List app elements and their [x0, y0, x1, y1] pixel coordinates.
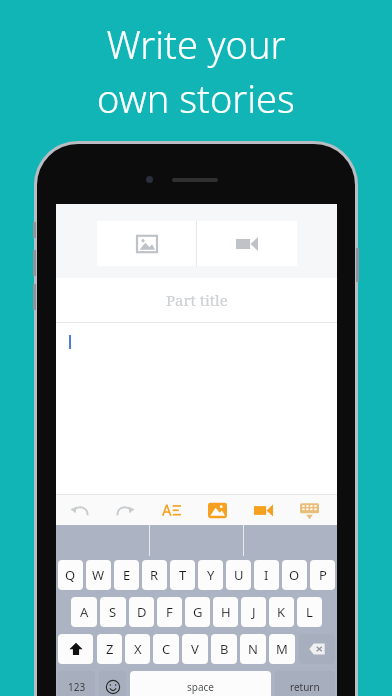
button[interactable]: Z	[97, 634, 122, 664]
button[interactable]: L	[297, 597, 322, 627]
staticText: G	[193, 603, 203, 621]
staticText: F	[166, 603, 173, 621]
staticText: W	[92, 566, 105, 584]
staticText: P	[319, 566, 327, 584]
staticText: M	[276, 640, 288, 658]
button[interactable]: U	[226, 560, 251, 590]
staticText: K	[277, 603, 286, 621]
staticText: own stories	[97, 72, 295, 124]
staticText: A	[80, 603, 89, 621]
button[interactable]: R	[142, 560, 167, 590]
staticText: T	[179, 566, 187, 584]
button[interactable]: Add image	[97, 221, 196, 266]
staticText: V	[191, 640, 199, 658]
button[interactable]: X	[125, 634, 150, 664]
button[interactable]: E	[114, 560, 139, 590]
staticText: Z	[106, 640, 114, 658]
button[interactable]: Backspace	[299, 634, 335, 664]
staticText: Part title	[166, 290, 228, 310]
button[interactable]: F	[157, 597, 182, 627]
button[interactable]: Y	[198, 560, 223, 590]
staticText: L	[306, 603, 313, 621]
staticText: O	[289, 566, 300, 584]
staticText: H	[221, 603, 231, 621]
button[interactable]: Redo	[102, 495, 148, 525]
button[interactable]: Text format	[148, 495, 194, 525]
staticText: R	[150, 566, 159, 584]
button[interactable]: space	[130, 671, 271, 696]
button[interactable]: B	[211, 634, 237, 664]
button[interactable]: P	[310, 560, 335, 590]
button[interactable]: Add video	[197, 221, 297, 266]
staticText: C	[162, 640, 171, 658]
button[interactable]: S	[100, 597, 126, 627]
button[interactable]: 123	[58, 671, 95, 696]
button[interactable]: O	[282, 560, 307, 590]
button[interactable]: A	[71, 597, 97, 627]
button[interactable]: Undo	[56, 495, 102, 525]
staticText: I	[264, 566, 269, 584]
button[interactable]: Q	[58, 560, 83, 590]
button[interactable]: H	[213, 597, 238, 627]
button[interactable]: W	[86, 560, 111, 590]
button[interactable]: T	[170, 560, 195, 590]
button[interactable]: K	[269, 597, 294, 627]
button[interactable]: J	[241, 597, 266, 627]
button[interactable]: return	[275, 671, 335, 696]
staticText: Q	[65, 566, 76, 584]
button[interactable]: D	[129, 597, 154, 627]
staticText: D	[137, 603, 147, 621]
button[interactable]	[56, 323, 337, 494]
staticText: N	[248, 640, 258, 658]
button[interactable]: Emoji	[99, 671, 126, 696]
staticText: return	[290, 680, 320, 694]
staticText: U	[234, 566, 244, 584]
staticText: Y	[207, 566, 215, 584]
button[interactable]: Part title	[56, 278, 337, 322]
button[interactable]: Insert video	[240, 495, 286, 525]
staticText: X	[134, 640, 142, 658]
button[interactable]: N	[240, 634, 266, 664]
button[interactable]: I	[254, 560, 279, 590]
button[interactable]: V	[182, 634, 208, 664]
button[interactable]: G	[185, 597, 210, 627]
button[interactable]: M	[269, 634, 295, 664]
staticText: E	[123, 566, 131, 584]
button[interactable]: Shift	[58, 634, 93, 664]
staticText: 123	[68, 680, 86, 694]
staticText: space	[187, 680, 214, 694]
staticText: S	[109, 603, 117, 621]
staticText: J	[252, 603, 256, 621]
staticText: Write your	[106, 18, 286, 70]
button[interactable]: Insert image	[194, 495, 240, 525]
button[interactable]: C	[153, 634, 179, 664]
button[interactable]: Hide keyboard	[286, 495, 332, 525]
staticText: B	[220, 640, 229, 658]
